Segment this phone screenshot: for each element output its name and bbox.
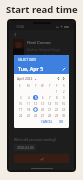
button[interactable]: 1 [54, 89, 59, 94]
button[interactable]: 24 [18, 113, 23, 118]
staticText: 8 [56, 96, 58, 100]
staticText: 13 [41, 102, 45, 106]
button[interactable]: 25 [26, 113, 31, 118]
button[interactable]: First Corner [13, 39, 70, 58]
staticText: 16 [62, 102, 66, 106]
button[interactable]: Previous month [56, 76, 61, 81]
staticText: W [41, 84, 44, 88]
button[interactable]: 9 [61, 95, 66, 100]
button[interactable]: 16 [61, 101, 66, 106]
staticText: 23 [62, 108, 66, 112]
staticText: 15 [55, 102, 59, 106]
button[interactable]: 26 [33, 113, 38, 118]
button[interactable]: 11 [26, 101, 31, 106]
staticText: Author: Hanjeet Singh [27, 48, 61, 52]
button[interactable]: 23 [61, 107, 66, 112]
staticText: 6 [42, 96, 44, 100]
button[interactable]: 29 [54, 113, 59, 118]
staticText: 2022-04-05 [17, 146, 34, 150]
staticText: Publisher: Kitab Ghar [27, 54, 59, 58]
staticText: 22 [55, 108, 59, 112]
button[interactable]: 2 [61, 89, 66, 94]
button[interactable]: CANCEL [39, 119, 55, 125]
staticText: 30 [62, 114, 66, 118]
button[interactable]: 3 [18, 95, 23, 100]
staticText: F [56, 84, 58, 88]
button[interactable]: OK [57, 119, 66, 125]
staticText: CANCEL [41, 120, 53, 124]
button[interactable]: 4 [26, 95, 31, 100]
staticText: 24 [19, 114, 23, 118]
button[interactable]: April 2022 [17, 77, 37, 81]
staticText: 2 [63, 90, 65, 94]
button[interactable]: 22 [54, 107, 59, 112]
button[interactable]: 8 [54, 95, 59, 100]
button[interactable]: Next month [61, 76, 66, 81]
staticText: April 2022 [17, 77, 33, 81]
staticText: 11 [27, 102, 31, 106]
staticText: 21 [48, 108, 52, 112]
staticText: First Corner [27, 40, 52, 46]
button[interactable]: 7 [47, 95, 52, 100]
button[interactable]: 13 [40, 101, 45, 106]
staticText: When did you start reading? [14, 138, 57, 142]
button[interactable]: 20 [40, 107, 45, 112]
staticText: 12 [34, 102, 38, 106]
button[interactable]: 18 [26, 107, 31, 112]
button[interactable]: 2022-04-05 [14, 144, 36, 151]
staticText: S [63, 84, 65, 88]
button[interactable]: 17 [18, 107, 23, 112]
staticText: SELECT DATE [18, 58, 37, 62]
staticText: Start read time [6, 3, 78, 16]
button[interactable]: 14 [47, 101, 52, 106]
staticText: 19 [34, 108, 38, 112]
button[interactable]: 15 [54, 101, 59, 106]
button[interactable]: 30 [61, 113, 66, 118]
staticText: 14 [48, 102, 52, 106]
button[interactable]: 27 [40, 113, 45, 118]
button[interactable]: 12 [33, 101, 38, 106]
staticText: M [27, 84, 30, 88]
staticText: S [19, 84, 21, 88]
staticText: 1 [56, 90, 58, 94]
staticText: 26 [34, 114, 38, 118]
button[interactable]: 6 [40, 95, 45, 100]
staticText: 3 [20, 96, 22, 100]
button[interactable]: Save [14, 154, 69, 163]
button[interactable]: Edit date [61, 66, 66, 71]
button[interactable]: Back [9, 30, 74, 38]
staticText: T [35, 84, 37, 88]
staticText: 25 [27, 114, 31, 118]
button[interactable]: 21 [47, 107, 52, 112]
staticText: 18 [27, 108, 31, 112]
button[interactable]: 10 [18, 101, 23, 106]
button[interactable]: 28 [47, 113, 52, 118]
staticText: 5 [35, 96, 37, 100]
button[interactable]: 5 [33, 95, 38, 100]
staticText: 12:06 [16, 25, 25, 29]
staticText: 27 [41, 114, 45, 118]
staticText: 17 [19, 108, 23, 112]
staticText: 4 [28, 96, 30, 100]
staticText: T [49, 84, 51, 88]
staticText: 10 [19, 102, 23, 106]
staticText: 9 [63, 96, 65, 100]
staticText: OK [59, 120, 64, 124]
button[interactable]: 19 [33, 107, 38, 112]
staticText: 28 [48, 114, 52, 118]
staticText: 7 [49, 96, 51, 100]
staticText: 29 [55, 114, 59, 118]
staticText: 20 [41, 108, 45, 112]
staticText: Tue, Apr 5 [18, 65, 44, 72]
